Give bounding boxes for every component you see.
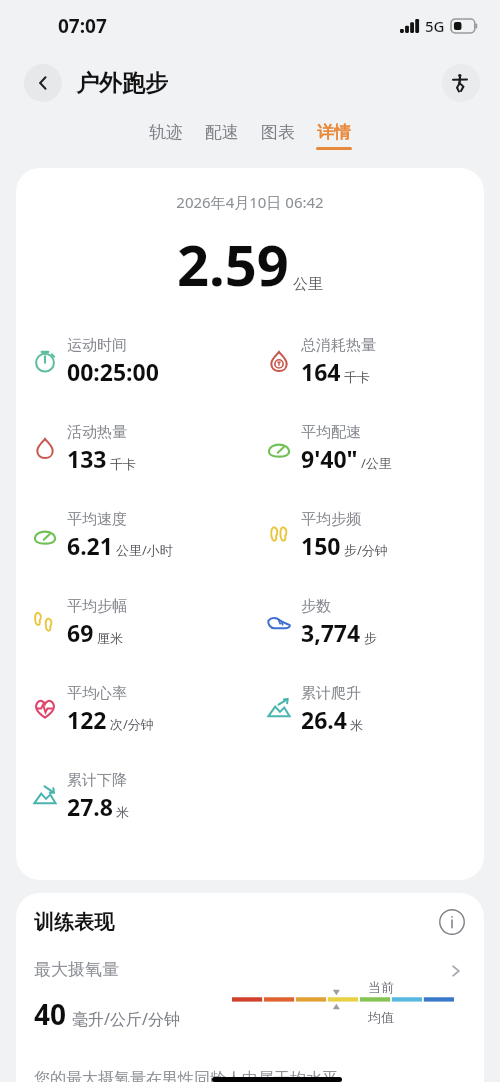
staticText: 00:25:00 — [67, 356, 159, 387]
button[interactable]: 配速 — [200, 120, 244, 152]
staticText: 07:07 — [58, 13, 107, 39]
staticText: 详情 — [317, 122, 351, 143]
staticText: 6.21 — [67, 530, 113, 561]
staticText: 配速 — [205, 122, 239, 143]
staticText: 5G — [425, 16, 445, 36]
staticText: 厘米 — [97, 630, 123, 646]
button[interactable]: 最大摄氧量 — [16, 951, 484, 1063]
staticText: 次/分钟 — [110, 715, 154, 733]
staticText: 平均步幅 — [67, 597, 127, 616]
button[interactable]: 平均速度 — [16, 506, 250, 593]
staticText: 总消耗热量 — [301, 336, 376, 355]
staticText: 千卡 — [110, 456, 136, 472]
button[interactable]: 详情 — [312, 120, 356, 152]
staticText: 122 — [67, 704, 107, 735]
staticText: 米 — [116, 804, 129, 820]
button[interactable]: 总消耗热量 — [250, 332, 484, 419]
staticText: 累计爬升 — [301, 684, 361, 703]
staticText: 最大摄氧量 — [34, 959, 119, 980]
staticText: 平均速度 — [67, 510, 127, 529]
button[interactable]: 轨迹 — [144, 120, 188, 152]
staticText: 步 — [364, 630, 377, 646]
staticText: /公里 — [361, 454, 392, 472]
staticText: 9'40" — [301, 443, 358, 474]
staticText: 步/分钟 — [344, 541, 388, 559]
button[interactable]: 图表 — [256, 120, 300, 152]
staticText: 2026年4月10日 06:42 — [16, 192, 484, 212]
button[interactable]: 步数 — [250, 593, 484, 680]
button[interactable]: 平均步幅 — [16, 593, 250, 680]
button[interactable]: 平均配速 — [250, 419, 484, 506]
staticText: 公里 — [293, 275, 323, 294]
staticText: 轨迹 — [149, 122, 183, 143]
staticText: 千卡 — [344, 369, 370, 385]
button[interactable]: 平均心率 — [16, 680, 250, 767]
staticText: 150 — [301, 530, 341, 561]
staticText: 训练表现 — [34, 910, 114, 935]
staticText: 均值 — [368, 1009, 394, 1025]
button[interactable]: Workout type — [442, 64, 480, 102]
staticText: 步数 — [301, 597, 331, 616]
staticText: 2.59 — [177, 226, 289, 302]
staticText: 公里/小时 — [116, 541, 173, 559]
staticText: 当前 — [368, 979, 394, 995]
button[interactable]: Back — [24, 64, 62, 102]
staticText: 图表 — [261, 122, 295, 143]
staticText: 3,774 — [301, 617, 361, 648]
staticText: 您的最大摄氧量在男性同龄人中属于均水平 — [34, 1069, 338, 1082]
button[interactable]: 累计爬升 — [250, 680, 484, 767]
staticText: 平均配速 — [301, 423, 361, 442]
button[interactable]: 平均步频 — [250, 506, 484, 593]
staticText: 133 — [67, 443, 107, 474]
staticText: 累计下降 — [67, 771, 127, 790]
button[interactable]: Info — [438, 908, 466, 936]
button[interactable]: 运动时间 — [16, 332, 250, 419]
staticText: 户外跑步 — [76, 69, 168, 98]
staticText: 米 — [350, 717, 363, 733]
staticText: 40 — [34, 995, 67, 1033]
staticText: 活动热量 — [67, 423, 127, 442]
button[interactable]: 累计下降 — [16, 767, 250, 854]
button[interactable]: 活动热量 — [16, 419, 250, 506]
staticText: 运动时间 — [67, 336, 127, 355]
staticText: 平均步频 — [301, 510, 361, 529]
staticText: 毫升/公斤/分钟 — [72, 1008, 180, 1030]
staticText: 69 — [67, 617, 94, 648]
staticText: 26.4 — [301, 704, 347, 735]
staticText: 27.8 — [67, 791, 113, 822]
staticText: 平均心率 — [67, 684, 127, 703]
staticText: 164 — [301, 356, 341, 387]
